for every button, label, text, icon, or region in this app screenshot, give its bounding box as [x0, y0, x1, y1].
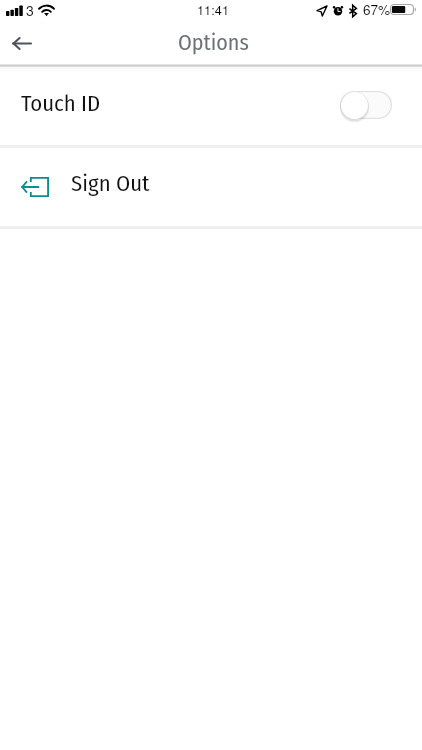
staticText: 11:41 — [197, 0, 230, 18]
button[interactable]: Touch ID — [0, 71, 422, 146]
staticText: Touch ID — [21, 90, 101, 117]
staticText: 67% — [363, 0, 391, 18]
staticText: Options — [178, 29, 249, 55]
button[interactable]: Back — [0, 21, 44, 65]
staticText: 3 — [26, 0, 34, 20]
button[interactable]: Touch ID toggle — [340, 91, 392, 119]
staticText: Sign Out — [71, 170, 150, 197]
button[interactable]: Sign Out — [0, 147, 422, 227]
